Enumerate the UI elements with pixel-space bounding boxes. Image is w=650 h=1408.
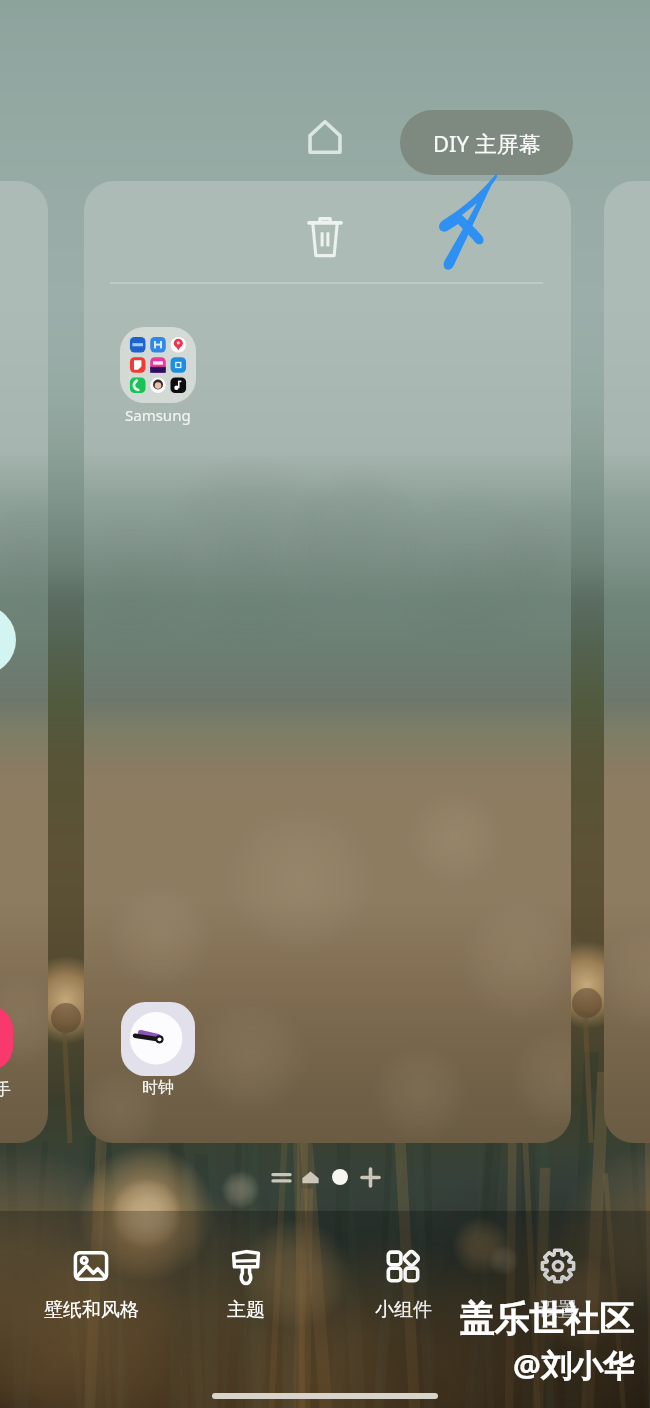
button[interactable]: Remove page <box>299 212 351 264</box>
button[interactable]: 主题 <box>171 1242 321 1326</box>
button[interactable]: Add page <box>357 1164 383 1190</box>
staticText: Samsung <box>125 405 191 425</box>
button[interactable]: 小组件 <box>328 1242 478 1326</box>
staticText: @刘小华 <box>513 1344 634 1386</box>
staticText: 壁纸和风格 <box>44 1298 139 1322</box>
button[interactable]: Home page <box>297 1164 323 1190</box>
staticText: 设置 <box>539 1298 577 1322</box>
staticText: 手 <box>0 1080 11 1100</box>
button[interactable]: Samsung <box>108 325 208 425</box>
button[interactable]: 壁纸和风格 <box>16 1242 166 1326</box>
staticText: 时钟 <box>142 1078 174 1098</box>
staticText: 盖乐世社区 <box>459 1297 634 1341</box>
button[interactable]: 设置 <box>483 1242 633 1326</box>
button[interactable]: 时钟 <box>108 1000 208 1098</box>
staticText: 主题 <box>227 1298 265 1322</box>
button[interactable]: DIY 主屏幕 <box>400 110 573 175</box>
button[interactable]: Current page <box>327 1164 353 1190</box>
staticText: DIY 主屏幕 <box>433 128 541 158</box>
staticText: 小组件 <box>375 1298 432 1322</box>
button[interactable]: App list <box>268 1164 294 1190</box>
button[interactable]: Home screen <box>305 117 345 157</box>
